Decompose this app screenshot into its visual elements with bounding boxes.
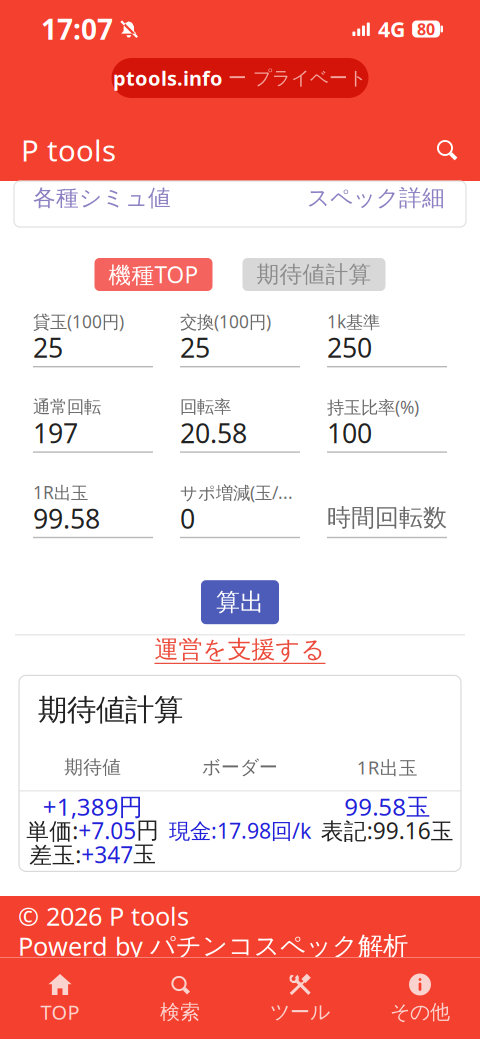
staticText: その他	[390, 1000, 450, 1024]
button[interactable]: TOP	[0, 957, 120, 1039]
staticText: パチンコスペック解析	[150, 930, 408, 961]
staticText: 1R出玉	[33, 481, 88, 504]
button[interactable]: 検索	[120, 957, 240, 1039]
button[interactable]: 運営を支援する	[154, 636, 325, 662]
staticText: Powerd by	[18, 929, 150, 963]
staticText: 4G	[378, 15, 405, 43]
staticText: 25	[180, 330, 210, 365]
staticText: 20.58	[180, 415, 247, 451]
staticText: 197	[33, 415, 78, 451]
staticText: 17:07	[41, 10, 113, 48]
staticText: © 2026 P tools	[18, 899, 189, 933]
button[interactable]: パチンコスペック解析	[150, 930, 408, 961]
staticText: ptools.info	[113, 65, 223, 91]
staticText: 交換(100円)	[180, 310, 271, 333]
staticText: 99.16玉	[373, 815, 454, 845]
staticText: 現金:17.98回/k	[169, 816, 311, 844]
staticText: +347	[81, 839, 133, 869]
staticText: 差玉:	[29, 839, 81, 869]
staticText: 1k基準	[327, 310, 380, 333]
staticText: サポ増減(玉/回…	[180, 481, 300, 504]
staticText: P tools	[21, 130, 116, 169]
staticText: 回転率	[180, 396, 231, 418]
staticText: 算出	[216, 587, 264, 617]
button[interactable]: Search	[424, 127, 470, 173]
button[interactable]: 期待値計算	[242, 258, 385, 291]
staticText: 表記:	[321, 815, 373, 845]
staticText: ボーダー	[202, 756, 278, 779]
button[interactable]: 算出	[201, 580, 279, 624]
staticText: 通常回転	[33, 396, 101, 418]
staticText: 期待値	[64, 756, 121, 779]
staticText: 機種TOP	[108, 259, 198, 289]
staticText: 80	[417, 18, 435, 40]
staticText: 0	[180, 501, 195, 536]
staticText: 時間回転数	[327, 503, 447, 533]
staticText: 持玉比率(%)	[327, 395, 419, 418]
staticText: 単価:	[26, 815, 78, 845]
staticText: 運営を支援する	[154, 635, 325, 664]
button[interactable]: その他	[360, 957, 480, 1039]
staticText: ツール	[270, 1000, 330, 1024]
button[interactable]: スペック詳細	[307, 186, 445, 210]
staticText: 各種シミュ値	[33, 184, 171, 212]
staticText: 250	[327, 330, 372, 365]
staticText: TOP	[40, 999, 79, 1025]
staticText: スペック詳細	[307, 184, 445, 212]
staticText: 100	[327, 415, 372, 451]
button[interactable]: ツール	[240, 957, 360, 1039]
staticText: 円	[136, 816, 159, 844]
staticText: +7.05	[78, 815, 136, 845]
staticText: 貸玉(100円)	[33, 310, 124, 333]
staticText: ー プライベート	[228, 66, 367, 89]
staticText: 1R出玉	[357, 755, 418, 780]
staticText: 玉	[133, 840, 156, 868]
staticText: 99.58玉	[344, 790, 430, 822]
staticText: 検索	[160, 1000, 200, 1024]
button[interactable]: 機種TOP	[94, 258, 212, 291]
button[interactable]: 各種シミュ値	[33, 186, 171, 210]
staticText: 99.58	[33, 501, 100, 536]
staticText: 期待値計算	[256, 261, 371, 288]
staticText: 25	[33, 330, 63, 365]
staticText: +1,389円	[43, 790, 143, 822]
staticText: 期待値計算	[38, 692, 183, 728]
